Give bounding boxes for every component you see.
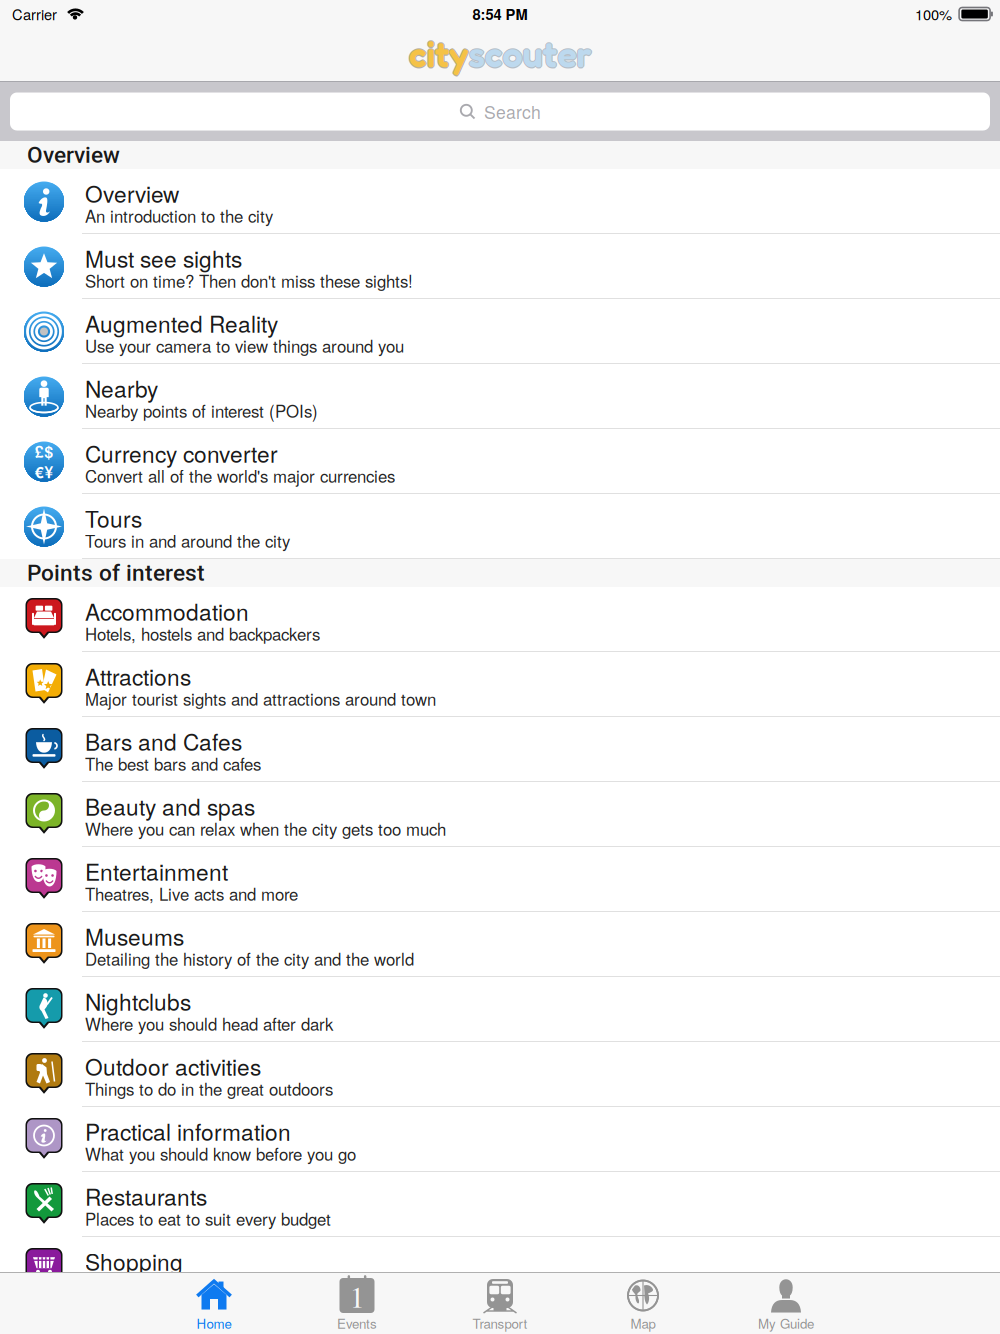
staticText: Accommodation	[85, 595, 249, 627]
staticText: Museums	[85, 920, 184, 952]
button[interactable]: Transport	[428, 1270, 571, 1334]
staticText: Practical information	[85, 1115, 291, 1147]
staticText: Events	[337, 1313, 377, 1333]
staticText: Augmented Reality	[85, 307, 278, 339]
staticText: Retail therapy	[85, 1271, 188, 1296]
staticText: Where you can relax when the city gets t…	[85, 816, 446, 841]
staticText: Convert all of the world's major currenc…	[85, 463, 395, 488]
staticText: Must see sights	[85, 242, 242, 274]
staticText: scouter	[467, 32, 590, 76]
staticText: The best bars and cafes	[85, 751, 261, 776]
staticText: Beauty and spas	[85, 790, 255, 822]
staticText: Points of interest	[27, 560, 205, 586]
button[interactable]: Must see sights	[0, 234, 1000, 299]
staticText: Attractions	[85, 660, 191, 692]
button[interactable]: Restaurants	[0, 1172, 1000, 1237]
staticText: Detailing the history of the city and th…	[85, 946, 414, 971]
staticText: Hotels, hostels and backpackers	[85, 621, 320, 646]
staticText: Home	[196, 1313, 231, 1333]
staticText: Nearby	[85, 372, 158, 404]
staticText: Carrier	[12, 3, 57, 24]
staticText: Entertainment	[85, 855, 228, 887]
button[interactable]: Attractions	[0, 652, 1000, 717]
staticText: scouter	[468, 32, 591, 76]
staticText: Map	[630, 1313, 655, 1333]
button[interactable]: Museums	[0, 912, 1000, 977]
staticText: Overview	[27, 142, 120, 168]
staticText: Search	[484, 99, 541, 124]
staticText: €	[35, 460, 44, 483]
staticText: scouter	[470, 32, 593, 76]
staticText: Use your camera to view things around yo…	[85, 333, 404, 358]
staticText: scouter	[468, 31, 591, 75]
staticText: 100%	[915, 3, 952, 24]
button[interactable]: Nightclubs	[0, 977, 1000, 1042]
staticText: Currency converter	[85, 437, 278, 469]
staticText: An introduction to the city	[85, 203, 273, 228]
staticText: city	[408, 33, 468, 77]
staticText: city	[407, 32, 467, 76]
button[interactable]: £	[0, 429, 1000, 494]
staticText: Bars and Cafes	[85, 725, 242, 757]
button[interactable]: Practical information	[0, 1107, 1000, 1172]
button[interactable]: Tours	[0, 494, 1000, 559]
staticText: scouter	[468, 33, 591, 77]
staticText: Major tourist sights and attractions aro…	[85, 686, 436, 711]
button[interactable]: Beauty and spas	[0, 782, 1000, 847]
staticText: £	[35, 440, 44, 463]
staticText: city	[408, 32, 468, 76]
staticText: 1	[349, 1275, 364, 1316]
staticText: Theatres, Live acts and more	[85, 881, 298, 906]
button[interactable]: Accommodation	[0, 587, 1000, 652]
button[interactable]: Search	[10, 92, 990, 130]
staticText: city	[410, 32, 470, 76]
button[interactable]: Augmented Reality	[0, 299, 1000, 364]
button[interactable]: My Guide	[714, 1270, 857, 1334]
staticText: Where you should head after dark	[85, 1011, 333, 1036]
button[interactable]: Entertainment	[0, 847, 1000, 912]
staticText: Short on time? Then don't miss these sig…	[85, 268, 413, 293]
button[interactable]: Nearby	[0, 364, 1000, 429]
staticText: Tours in and around the city	[85, 528, 290, 553]
button[interactable]: Map	[571, 1270, 714, 1334]
staticText: Tours	[85, 502, 142, 534]
button[interactable]: Bars and Cafes	[0, 717, 1000, 782]
staticText: Nightclubs	[85, 985, 191, 1017]
button[interactable]: 1	[285, 1270, 428, 1334]
button[interactable]: Outdoor activities	[0, 1042, 1000, 1107]
staticText: 8:54 PM	[472, 3, 527, 24]
staticText: Restaurants	[85, 1180, 207, 1212]
button[interactable]: Shopping	[0, 1237, 1000, 1302]
button[interactable]: Overview	[0, 169, 1000, 234]
staticText: Things to do in the great outdoors	[85, 1076, 333, 1101]
button[interactable]: Home	[142, 1270, 285, 1334]
staticText: Places to eat to suit every budget	[85, 1206, 331, 1231]
staticText: Nearby points of interest (POIs)	[85, 398, 318, 423]
staticText: ¥	[44, 460, 53, 483]
staticText: $	[44, 440, 53, 463]
staticText: What you should know before you go	[85, 1141, 356, 1166]
staticText: city	[408, 31, 468, 75]
staticText: My Guide	[758, 1313, 814, 1333]
staticText: Transport	[472, 1313, 527, 1333]
staticText: Overview	[85, 177, 179, 209]
staticText: Outdoor activities	[85, 1050, 261, 1082]
staticText: Shopping	[85, 1245, 183, 1277]
